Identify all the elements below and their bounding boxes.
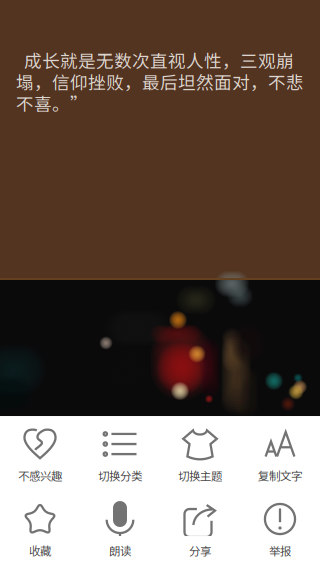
button[interactable]: 朗读 — [80, 492, 160, 567]
staticText: 切换主题 — [178, 468, 222, 483]
button[interactable]: 不感兴趣 — [0, 417, 80, 492]
staticText: 复制文字 — [258, 468, 302, 483]
staticText: 不喜。” — [16, 93, 88, 113]
button[interactable]: 切换主题 — [160, 417, 240, 492]
button[interactable]: 分享 — [160, 492, 240, 567]
staticText: 朗读 — [109, 543, 131, 558]
staticText: 成长就是无数次直视人性，三观崩 — [16, 50, 294, 70]
button[interactable]: 举报 — [240, 492, 320, 567]
button[interactable]: 复制文字 — [240, 417, 320, 492]
staticText: 收藏 — [29, 543, 51, 558]
staticText: 塌，信仰挫败，最后坦然面对，不悲 — [16, 71, 304, 92]
button[interactable]: 切换分类 — [80, 417, 160, 492]
staticText: 切换分类 — [98, 468, 142, 483]
staticText: 举报 — [269, 543, 291, 558]
button[interactable]: 收藏 — [0, 492, 80, 567]
staticText: 不感兴趣 — [18, 468, 62, 483]
staticText: 分享 — [189, 543, 211, 558]
